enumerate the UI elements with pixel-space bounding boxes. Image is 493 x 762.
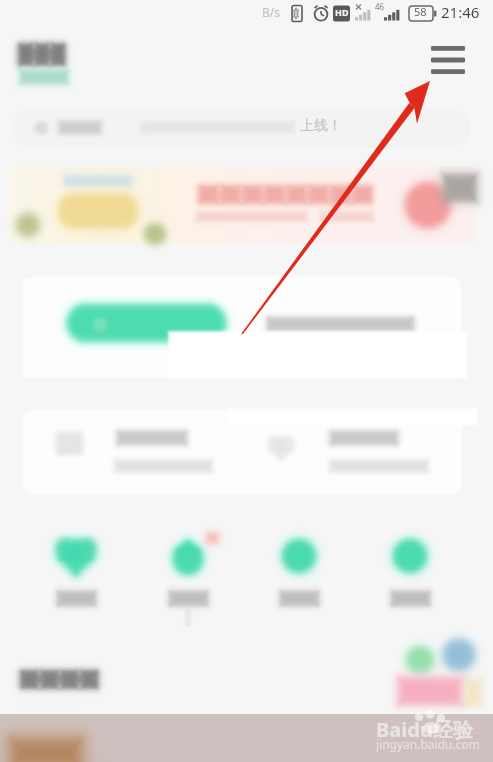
staticText: 58: [414, 4, 427, 19]
staticText: jingyan.baidu.com: [376, 736, 480, 752]
button[interactable]: Messages: [132, 528, 242, 612]
button[interactable]: Orders: [243, 528, 353, 612]
button[interactable]: Search: [12, 107, 470, 149]
staticText: 上线！: [300, 117, 342, 135]
button[interactable]: Promotion banner: [9, 167, 475, 243]
button[interactable]: Left shortcut: [22, 410, 242, 494]
button[interactable]: Menu: [424, 36, 472, 84]
staticText: HD: [335, 6, 349, 18]
staticText: 46: [375, 1, 385, 12]
staticText: Baidu经验: [376, 716, 473, 743]
button[interactable]: Right shortcut: [242, 410, 462, 494]
staticText: B/s: [262, 4, 281, 20]
button[interactable]: Main action card: [22, 277, 462, 378]
button[interactable]: Profile: [354, 528, 464, 612]
staticText: 21:46: [441, 2, 480, 22]
button[interactable]: Favourites: [21, 528, 131, 612]
